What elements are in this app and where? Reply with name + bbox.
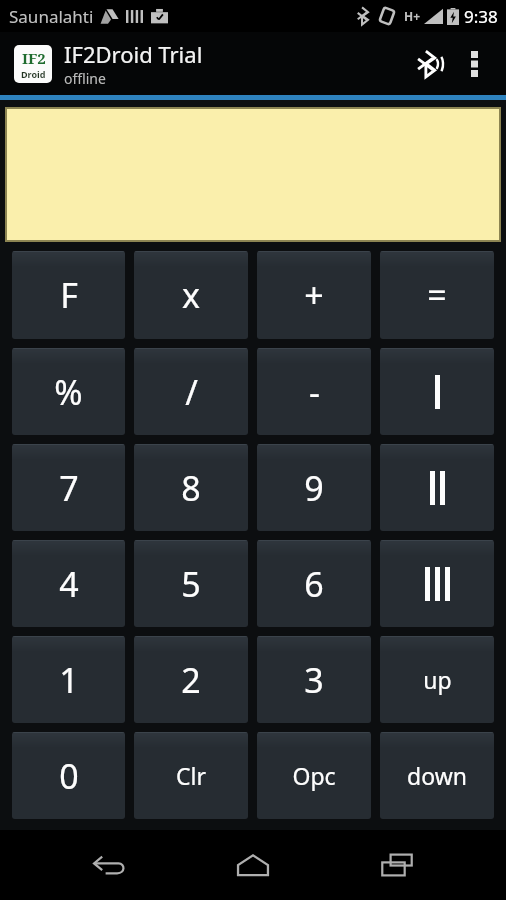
staticText: 8 [181, 465, 201, 511]
staticText: 2 [181, 657, 201, 703]
button[interactable]: Opc [257, 732, 371, 819]
button[interactable]: 1 [12, 636, 125, 723]
staticText: Opc [292, 760, 336, 791]
button[interactable]: More options [452, 42, 496, 86]
button[interactable]: Clr [134, 732, 248, 819]
button[interactable]: 4 [12, 540, 125, 627]
staticText: offline [64, 69, 106, 88]
staticText: = [427, 272, 447, 318]
button[interactable]: 9 [257, 444, 371, 531]
staticText: % [54, 369, 83, 415]
staticText: x [182, 272, 200, 318]
staticText: 9:38 [464, 5, 498, 28]
button[interactable]: % [12, 348, 125, 435]
button[interactable]: Home [218, 830, 288, 900]
button[interactable]: 7 [12, 444, 125, 531]
staticText: 7 [59, 465, 79, 511]
button[interactable]: = [380, 251, 494, 339]
button[interactable]: Recent apps [362, 830, 432, 900]
staticText: 1 [59, 657, 79, 703]
button[interactable]: + [257, 251, 371, 339]
button[interactable]: x [134, 251, 248, 339]
button[interactable]: up [380, 636, 494, 723]
staticText: / [185, 369, 198, 415]
button[interactable]: Back [74, 830, 144, 900]
staticText: up [423, 664, 452, 695]
staticText: 6 [304, 561, 324, 607]
staticText: IF2Droid Trial [64, 39, 203, 69]
button[interactable] [380, 540, 494, 627]
staticText: IF2 [22, 48, 46, 68]
staticText: + [304, 272, 324, 318]
button[interactable]: / [134, 348, 248, 435]
button[interactable]: 3 [257, 636, 371, 723]
button[interactable]: 5 [134, 540, 248, 627]
button[interactable] [380, 444, 494, 531]
staticText: Droid [21, 68, 46, 80]
button[interactable]: - [257, 348, 371, 435]
button[interactable]: F [12, 251, 125, 339]
staticText: - [309, 369, 320, 415]
staticText: 3 [304, 657, 324, 703]
staticText: 4 [59, 561, 79, 607]
staticText: 5 [181, 561, 201, 607]
staticText: down [407, 760, 467, 791]
button[interactable]: down [380, 732, 494, 819]
button[interactable] [380, 348, 494, 435]
button[interactable]: 0 [12, 732, 125, 819]
button[interactable]: 8 [134, 444, 248, 531]
button[interactable]: Bluetooth audio [406, 41, 452, 87]
button[interactable]: 6 [257, 540, 371, 627]
staticText: 9 [304, 465, 324, 511]
staticText: 0 [59, 753, 79, 799]
button[interactable]: 2 [134, 636, 248, 723]
staticText: H+ [404, 8, 421, 24]
staticText: Clr [176, 760, 206, 791]
staticText: Saunalahti [9, 5, 94, 28]
staticText: F [60, 272, 78, 318]
